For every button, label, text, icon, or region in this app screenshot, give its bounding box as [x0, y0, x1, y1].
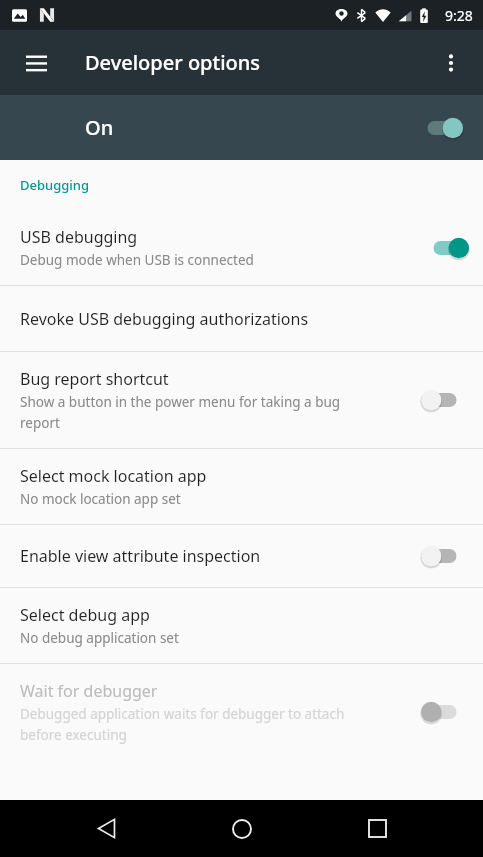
- button[interactable]: On: [0, 95, 483, 160]
- button[interactable]: Bug report shortcut: [0, 352, 483, 448]
- button[interactable]: USB debugging: [0, 210, 483, 285]
- staticText: Debugged application waits for debugger …: [20, 705, 345, 744]
- button[interactable]: Home: [213, 800, 271, 857]
- button[interactable]: Select mock location app: [0, 449, 483, 524]
- button[interactable]: Enable view attribute inspection: [0, 525, 483, 587]
- staticText: Debug mode when USB is connected: [20, 251, 254, 269]
- staticText: Developer options: [85, 49, 261, 76]
- staticText: Enable view attribute inspection: [20, 545, 261, 567]
- staticText: Show a button in the power menu for taki…: [20, 393, 341, 432]
- staticText: Debugging: [20, 176, 90, 194]
- staticText: Select debug app: [20, 604, 150, 626]
- staticText: 9:28: [445, 6, 473, 25]
- staticText: On: [85, 114, 114, 141]
- button[interactable]: More options: [429, 41, 473, 85]
- button[interactable]: Back: [77, 800, 135, 857]
- button[interactable]: Wait for debugger: [0, 664, 483, 760]
- staticText: Select mock location app: [20, 465, 207, 487]
- staticText: Bug report shortcut: [20, 368, 169, 390]
- button[interactable]: Revoke USB debugging authorizations: [0, 286, 483, 351]
- button[interactable]: Recent apps: [348, 800, 406, 857]
- staticText: No mock location app set: [20, 490, 181, 508]
- button[interactable]: Select debug app: [0, 588, 483, 663]
- staticText: Revoke USB debugging authorizations: [20, 308, 309, 330]
- staticText: Wait for debugger: [20, 680, 158, 702]
- button[interactable]: Open navigation drawer: [14, 41, 58, 85]
- staticText: USB debugging: [20, 226, 138, 248]
- staticText: No debug application set: [20, 629, 179, 647]
